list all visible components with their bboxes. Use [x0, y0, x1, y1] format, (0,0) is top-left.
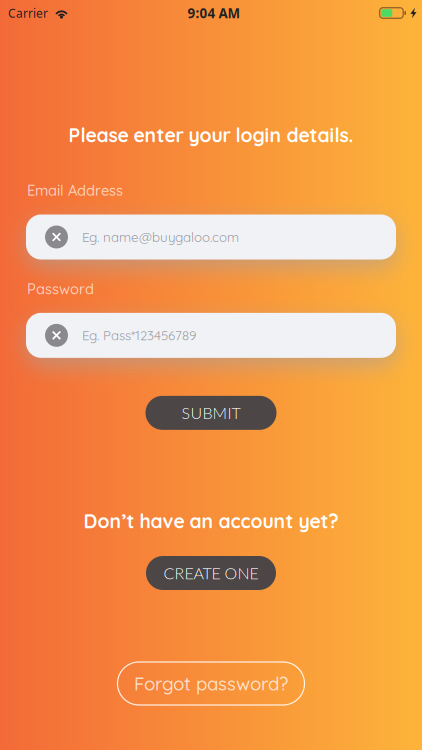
staticText: SUBMIT	[181, 403, 240, 422]
staticText: 9:04 AM	[187, 4, 240, 22]
button[interactable]: SUBMIT	[145, 396, 276, 430]
staticText: Please enter your login details.	[68, 123, 353, 147]
button[interactable]: Forgot password?	[117, 662, 304, 705]
button[interactable]: CREATE ONE	[146, 556, 276, 590]
staticText: Password	[27, 279, 94, 298]
staticText: Carrier	[8, 5, 48, 21]
staticText: CREATE ONE	[163, 563, 258, 583]
staticText: Email Address	[27, 181, 123, 199]
staticText: Forgot password?	[134, 672, 288, 695]
staticText: Don’t have an account yet?	[83, 509, 338, 533]
staticText: Eg. name@buygaloo.com	[82, 229, 239, 245]
staticText: Eg. Pass*123456789	[82, 327, 196, 344]
